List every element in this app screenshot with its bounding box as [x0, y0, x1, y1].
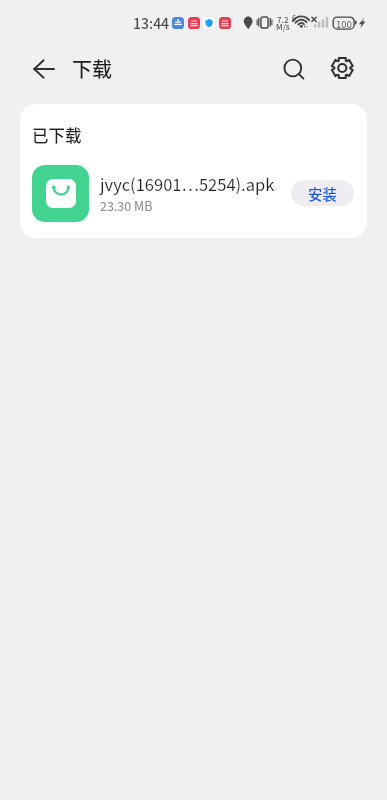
button[interactable]: Settings — [326, 53, 359, 86]
staticText: 7.2 — [277, 14, 289, 26]
button[interactable]: Back — [25, 53, 57, 85]
staticText: 100 — [336, 17, 352, 31]
staticText: M/s — [276, 21, 290, 33]
button[interactable]: jvyc(16901…5254).apk — [20, 156, 367, 226]
staticText: 6 — [292, 13, 296, 23]
staticText: 下载 — [72, 54, 112, 83]
button[interactable]: Search — [276, 53, 309, 86]
staticText: 23.30 MB — [100, 196, 153, 214]
staticText: jvyc(16901…5254).apk — [100, 172, 275, 196]
staticText: 安装 — [308, 183, 337, 204]
staticText: 13:44 — [133, 13, 170, 33]
button[interactable]: 安装 — [291, 180, 354, 206]
staticText: 已下载 — [32, 123, 82, 147]
